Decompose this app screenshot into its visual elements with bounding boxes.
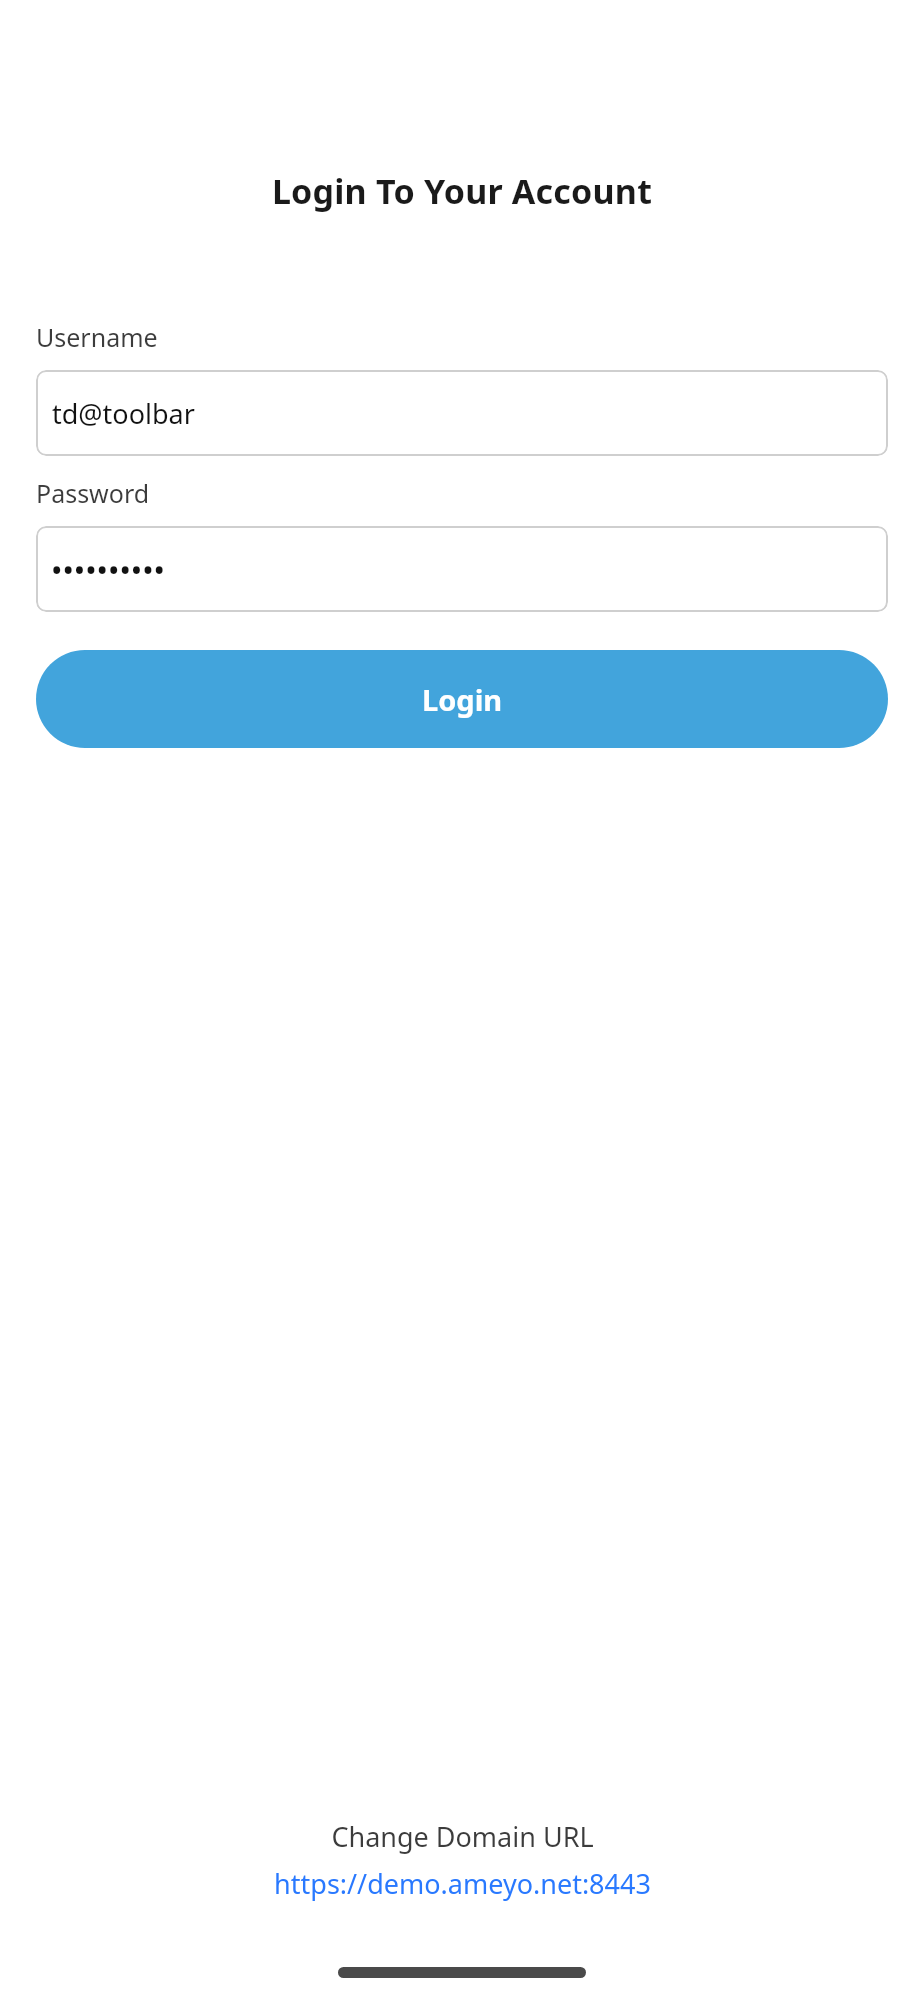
staticText: •••••••••• — [52, 552, 167, 586]
button[interactable]: Change Domain URL — [323, 1816, 602, 1857]
button[interactable]: Login — [36, 650, 888, 748]
staticText: Login — [422, 680, 503, 719]
staticText: https://demo.ameyo.net:8443 — [274, 1865, 651, 1902]
staticText: Username — [36, 320, 158, 354]
button[interactable]: •••••••••• — [36, 526, 888, 612]
button[interactable]: td@toolbar — [36, 370, 888, 456]
staticText: Change Domain URL — [331, 1818, 594, 1855]
staticText: Login To Your Account — [0, 168, 924, 214]
staticText: Password — [36, 476, 150, 510]
staticText: td@toolbar — [52, 395, 195, 432]
button[interactable]: https://demo.ameyo.net:8443 — [266, 1863, 659, 1904]
